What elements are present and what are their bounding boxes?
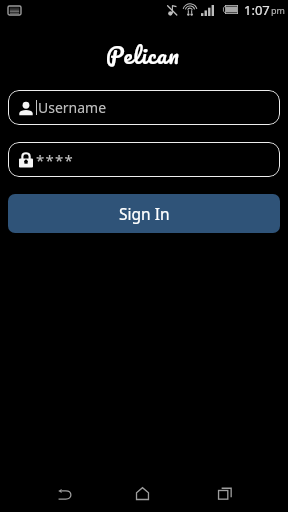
staticText: Pelican xyxy=(106,35,180,74)
button[interactable]: Home xyxy=(118,469,167,512)
staticText: **** xyxy=(36,150,74,170)
button[interactable]: Back xyxy=(40,470,89,512)
button[interactable]: Sign In xyxy=(8,194,280,233)
button[interactable]: Recent apps xyxy=(200,469,249,512)
staticText: Username xyxy=(38,98,107,117)
button[interactable]: **** xyxy=(8,142,280,177)
staticText: pm xyxy=(271,4,285,16)
staticText: Sign In xyxy=(119,203,170,224)
staticText: 1:07 xyxy=(244,1,270,19)
button[interactable]: Username xyxy=(8,90,280,125)
